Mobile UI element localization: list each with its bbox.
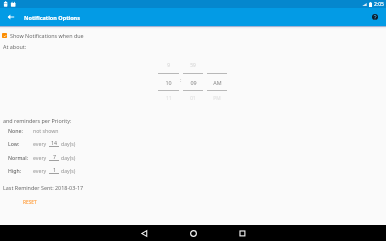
staticText: AM <box>213 79 222 86</box>
button[interactable]: Low: <box>0 138 386 148</box>
staticText: every <box>33 167 47 174</box>
staticText: not shown <box>33 127 59 134</box>
staticText: 09 <box>190 79 197 86</box>
staticText: day(s) <box>61 140 76 147</box>
staticText: and reminders per Priority: <box>3 117 72 124</box>
button[interactable]: Home <box>169 225 218 241</box>
staticText: None: <box>8 127 23 134</box>
button[interactable]: None: <box>0 125 386 135</box>
staticText: : <box>180 76 182 83</box>
button[interactable]: Back <box>0 8 22 26</box>
staticText: 10 <box>165 79 172 86</box>
staticText: day(s) <box>61 167 76 174</box>
staticText: Last Reminder Sent: 2018-03-17 <box>3 184 84 191</box>
staticText: every <box>33 154 47 161</box>
staticText: 59 <box>190 62 196 69</box>
button[interactable]: Back <box>120 225 169 241</box>
button[interactable]: Recents <box>218 225 267 241</box>
staticText: 7 <box>53 153 56 160</box>
staticText: day(s) <box>61 154 76 161</box>
staticText: 9 <box>167 62 170 69</box>
staticText: High: <box>8 167 22 174</box>
staticText: 2:05 <box>374 1 384 8</box>
staticText: At about: <box>3 43 27 50</box>
button[interactable]: RESET <box>18 197 42 208</box>
staticText: 11 <box>166 95 172 102</box>
staticText: every <box>33 140 47 147</box>
staticText: Low: <box>8 140 20 147</box>
staticText: Notification Options <box>24 14 80 21</box>
button[interactable]: Help <box>369 11 381 23</box>
button[interactable]: Show Notifications when due <box>0 31 386 40</box>
staticText: PM <box>213 95 221 102</box>
staticText: Normal: <box>8 154 29 161</box>
staticText: 14 <box>51 139 57 146</box>
staticText: 1 <box>53 166 56 173</box>
button[interactable]: High: <box>0 165 386 175</box>
staticText: RESET <box>23 199 37 206</box>
staticText: 01 <box>190 95 196 102</box>
staticText: Show Notifications when due <box>10 32 84 39</box>
button[interactable]: Normal: <box>0 152 386 162</box>
